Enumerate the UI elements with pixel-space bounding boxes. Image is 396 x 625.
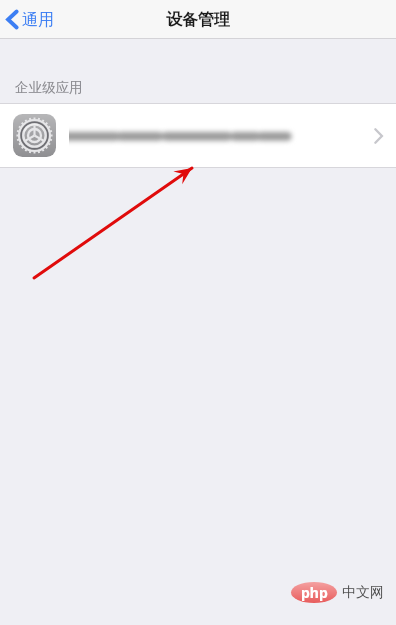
button[interactable]: Open details [0,104,396,167]
staticText: 中文网 [342,584,384,602]
button[interactable]: 通用 [4,5,56,34]
other: Open details [374,128,383,144]
staticText: 企业级应用 [15,79,83,96]
staticText: 通用 [22,10,54,30]
staticText: php [301,583,328,602]
staticText: 设备管理 [166,10,230,30]
